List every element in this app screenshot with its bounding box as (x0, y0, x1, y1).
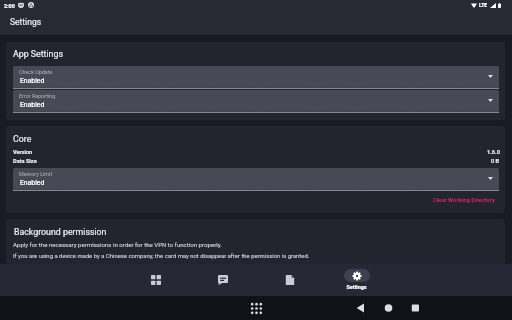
button[interactable]: Dashboard (122, 264, 189, 296)
staticText: Memory Limit (19, 171, 53, 177)
staticText: Enabled (20, 101, 45, 109)
staticText: Core (13, 134, 32, 144)
staticText: 0 B (491, 158, 500, 165)
button[interactable]: Memory Limit (13, 168, 499, 191)
button[interactable]: Recent apps (406, 298, 424, 318)
button[interactable]: Chat (189, 264, 256, 296)
button[interactable]: Logs (256, 264, 323, 296)
staticText: Error Reporting (19, 93, 56, 99)
staticText: 2:00 (4, 3, 15, 9)
staticText: LTE (479, 2, 488, 8)
staticText: App Settings (13, 49, 63, 59)
staticText: Apply for the necessary permissions in o… (13, 241, 222, 248)
button[interactable]: Clear Working Directory (424, 195, 505, 206)
button[interactable]: Error Reporting (13, 90, 499, 113)
staticText: Enabled (20, 179, 45, 187)
button[interactable]: Settings (323, 264, 390, 296)
button[interactable]: All apps (250, 302, 263, 315)
button[interactable]: Home (379, 298, 397, 318)
staticText: Check Update (19, 69, 53, 75)
staticText: Background permission (14, 227, 107, 237)
staticText: Settings (346, 284, 367, 290)
button[interactable]: Check Update (13, 66, 499, 89)
button[interactable]: Back (352, 298, 370, 318)
staticText: Data Size (13, 158, 37, 165)
staticText: Settings (10, 17, 42, 27)
staticText: Version (13, 149, 33, 156)
staticText: Enabled (20, 77, 45, 85)
staticText: 1.6.0 (487, 149, 500, 156)
staticText: If you are using a device made by a Chin… (13, 253, 310, 260)
